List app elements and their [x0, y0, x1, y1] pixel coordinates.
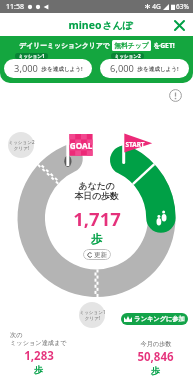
staticText: 63% — [176, 2, 189, 11]
staticText: 歩を達成しよう! — [41, 65, 83, 73]
staticText: さんぽ — [102, 19, 133, 32]
staticText: 更新 — [94, 251, 107, 259]
staticText: 無料チップ — [114, 41, 149, 50]
staticText: ミッション2 — [114, 53, 141, 59]
button[interactable]: ミッション2 クリア! — [1, 132, 41, 158]
button[interactable]: 6,000 — [100, 59, 189, 78]
button[interactable]: Information — [167, 87, 184, 104]
staticText: デイリーミッションクリアで — [19, 41, 110, 50]
button[interactable]: ランキングに参加 — [121, 313, 188, 325]
staticText: 1,717 — [73, 206, 121, 231]
staticText: 次の ミッション達成まで — [10, 331, 67, 347]
staticText: 50,846 — [137, 349, 174, 365]
staticText: ランキングに参加 — [134, 315, 185, 323]
button[interactable]: 3,000 — [4, 59, 92, 78]
staticText: 歩 — [151, 365, 160, 376]
staticText: ミッション1 クリア! — [79, 309, 106, 321]
staticText: 今月の歩数 — [140, 340, 172, 348]
button[interactable]: 更新 — [83, 249, 111, 260]
staticText: START — [124, 140, 146, 149]
staticText: ミッション2 クリア! — [8, 139, 35, 151]
staticText: ミッション1 — [18, 53, 45, 59]
staticText: GOAL — [69, 140, 93, 151]
staticText: あなたの 本日の歩数 — [74, 181, 119, 202]
button[interactable]: Close — [171, 17, 187, 33]
button[interactable]: ミッション1 クリア! — [72, 302, 112, 328]
staticText: mineo — [68, 18, 102, 32]
staticText: 1,283 — [24, 348, 54, 364]
staticText: 歩 — [91, 232, 103, 246]
staticText: をGET! — [153, 41, 175, 50]
staticText: 11:58 — [6, 2, 24, 12]
staticText: 6,000 — [110, 62, 134, 75]
staticText: 歩 — [34, 364, 43, 375]
staticText: 4G — [152, 2, 161, 11]
staticText: 3,000 — [14, 62, 38, 75]
staticText: 歩を達成しよう! — [137, 65, 179, 73]
